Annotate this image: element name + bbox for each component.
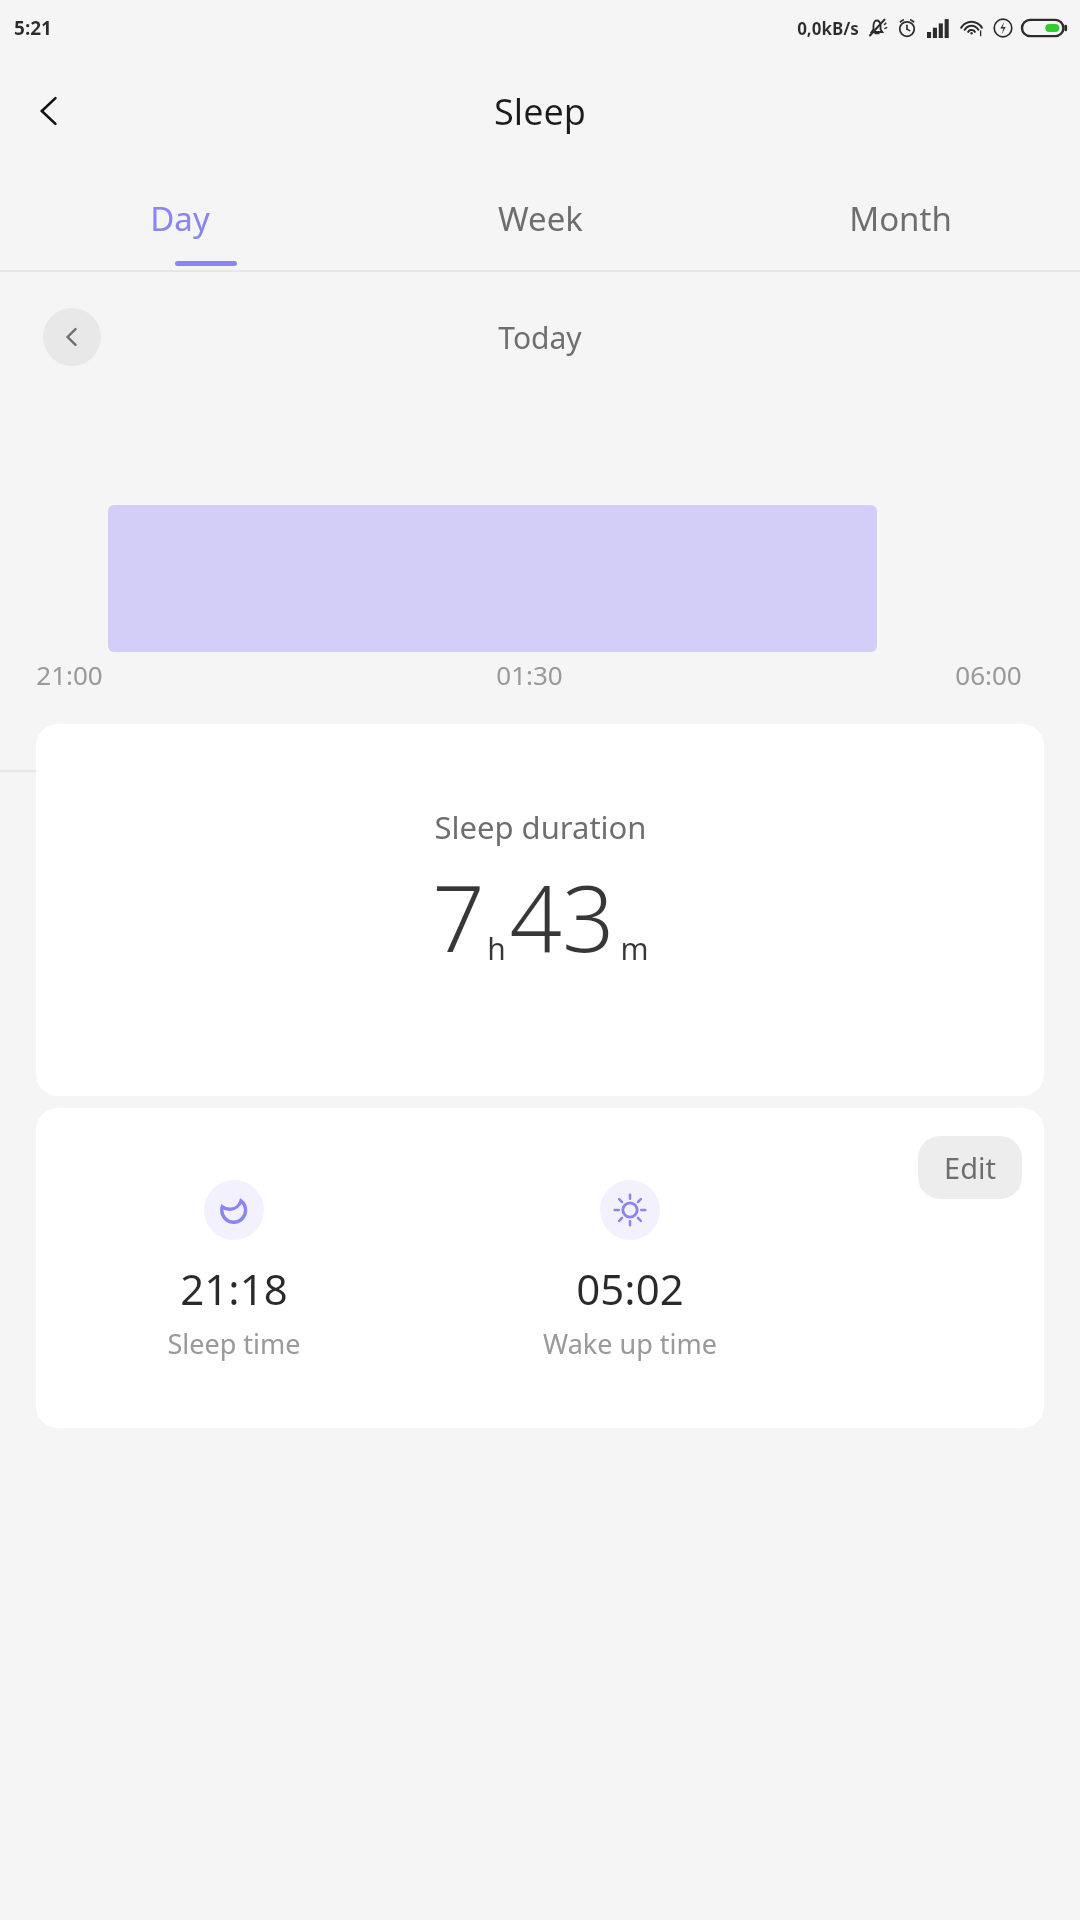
staticText: 21:18 bbox=[180, 1260, 288, 1317]
button[interactable]: Day bbox=[0, 166, 360, 270]
button[interactable]: Month bbox=[720, 166, 1080, 270]
button[interactable]: Wake up time bbox=[543, 1180, 717, 1362]
staticText: Today bbox=[498, 317, 582, 358]
button[interactable]: Back bbox=[22, 83, 78, 139]
staticText: 21:00 bbox=[36, 657, 103, 692]
staticText: 7 bbox=[432, 854, 485, 979]
staticText: Day bbox=[150, 196, 210, 241]
staticText: Wake up time bbox=[543, 1325, 717, 1362]
staticText: 5:21 bbox=[14, 15, 52, 41]
button[interactable]: Edit bbox=[918, 1136, 1022, 1199]
staticText: 05:02 bbox=[576, 1260, 684, 1317]
other: Sleep time bbox=[204, 1180, 264, 1240]
staticText: Month bbox=[849, 196, 952, 241]
button[interactable]: Week bbox=[360, 166, 720, 270]
staticText: 43 bbox=[509, 854, 615, 979]
staticText: h bbox=[487, 928, 506, 969]
staticText: Week bbox=[498, 196, 583, 241]
staticText: m bbox=[620, 928, 649, 969]
staticText: 0,0kB/s bbox=[797, 17, 859, 40]
staticText: Edit bbox=[944, 1148, 996, 1187]
other: Wake up time bbox=[600, 1180, 660, 1240]
button[interactable]: Sleep duration bbox=[36, 724, 1044, 1096]
staticText: 01:30 bbox=[496, 657, 563, 692]
staticText: Sleep bbox=[494, 87, 586, 136]
button[interactable]: Previous day bbox=[43, 308, 101, 366]
button[interactable]: Sleep time bbox=[167, 1180, 301, 1362]
staticText: Sleep time bbox=[167, 1325, 301, 1362]
staticText: 06:00 bbox=[955, 657, 1022, 692]
staticText: Sleep duration bbox=[434, 806, 647, 848]
